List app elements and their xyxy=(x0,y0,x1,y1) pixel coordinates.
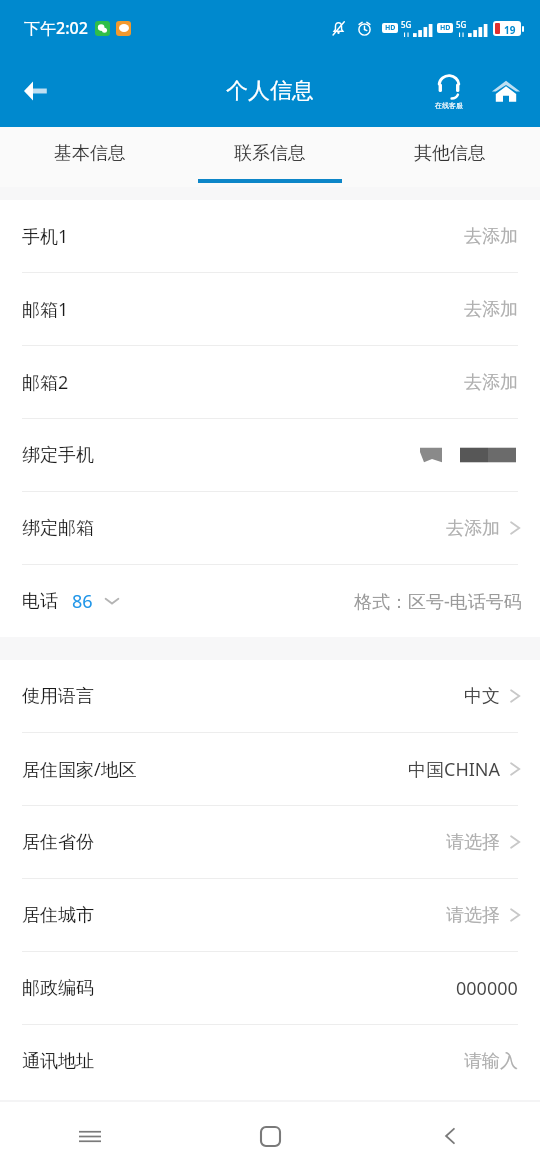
button[interactable]: 居住国家/地区 xyxy=(0,733,540,805)
staticText: 居住城市 xyxy=(22,904,94,927)
button[interactable]: 联系信息 xyxy=(180,127,360,187)
button[interactable]: 在线客服 xyxy=(422,69,476,114)
staticText: 绑定手机 xyxy=(22,444,94,467)
button[interactable]: 通讯地址 xyxy=(0,1025,540,1097)
staticText: 居住国家/地区 xyxy=(22,757,137,782)
staticText: 个人信息 xyxy=(226,77,314,105)
staticText: 5G xyxy=(401,19,412,30)
staticText: HD xyxy=(385,23,396,33)
staticText: 手机1 xyxy=(22,224,69,249)
staticText: 使用语言 xyxy=(22,685,94,708)
staticText: 邮箱2 xyxy=(22,370,69,395)
staticText: 000000 xyxy=(456,976,518,1001)
button[interactable]: 电话 xyxy=(0,565,540,637)
button[interactable]: 返回 xyxy=(8,63,64,119)
staticText: 电话 xyxy=(22,590,58,613)
button[interactable]: 邮政编码 xyxy=(0,952,540,1024)
staticText: HD xyxy=(440,23,451,33)
staticText: 邮箱1 xyxy=(22,297,69,322)
button[interactable]: 主屏幕 xyxy=(180,1102,360,1170)
staticText: 格式：区号-电话号码 xyxy=(354,589,522,614)
staticText: 去添加 xyxy=(446,517,500,540)
button[interactable]: 邮箱2 xyxy=(0,346,540,418)
staticText: 请输入 xyxy=(464,1050,518,1073)
button[interactable]: 使用语言 xyxy=(0,660,540,732)
staticText: 去添加 xyxy=(464,371,518,394)
button[interactable]: 基本信息 xyxy=(0,127,180,187)
button[interactable]: 居住省份 xyxy=(0,806,540,878)
button[interactable]: 手机1 xyxy=(0,200,540,272)
staticText: 其他信息 xyxy=(414,142,486,165)
button[interactable]: 绑定邮箱 xyxy=(0,492,540,564)
staticText: 邮政编码 xyxy=(22,977,94,1000)
staticText: 请选择 xyxy=(446,904,500,927)
staticText: 19 xyxy=(504,23,516,34)
staticText: 5G xyxy=(456,19,467,30)
staticText: 绑定邮箱 xyxy=(22,517,94,540)
button[interactable]: 绑定手机 xyxy=(0,419,540,491)
staticText: 联系信息 xyxy=(234,142,306,165)
staticText: 中国CHINA xyxy=(408,757,500,782)
staticText: 中文 xyxy=(464,685,500,708)
staticText: 下午2:02 xyxy=(24,17,88,39)
button[interactable]: 返回 xyxy=(360,1102,540,1170)
staticText: 通讯地址 xyxy=(22,1050,94,1073)
staticText: 在线客服 xyxy=(435,101,463,110)
button[interactable]: 最近任务 xyxy=(0,1102,180,1170)
button[interactable]: 居住城市 xyxy=(0,879,540,951)
button[interactable]: 邮箱1 xyxy=(0,273,540,345)
staticText: 请选择 xyxy=(446,831,500,854)
staticText: 居住省份 xyxy=(22,831,94,854)
button[interactable]: 首页 xyxy=(482,67,530,115)
button[interactable]: 其他信息 xyxy=(360,127,540,187)
staticText: 去添加 xyxy=(464,298,518,321)
staticText: 去添加 xyxy=(464,225,518,248)
staticText: 86 xyxy=(72,589,93,614)
staticText: 基本信息 xyxy=(54,142,126,165)
